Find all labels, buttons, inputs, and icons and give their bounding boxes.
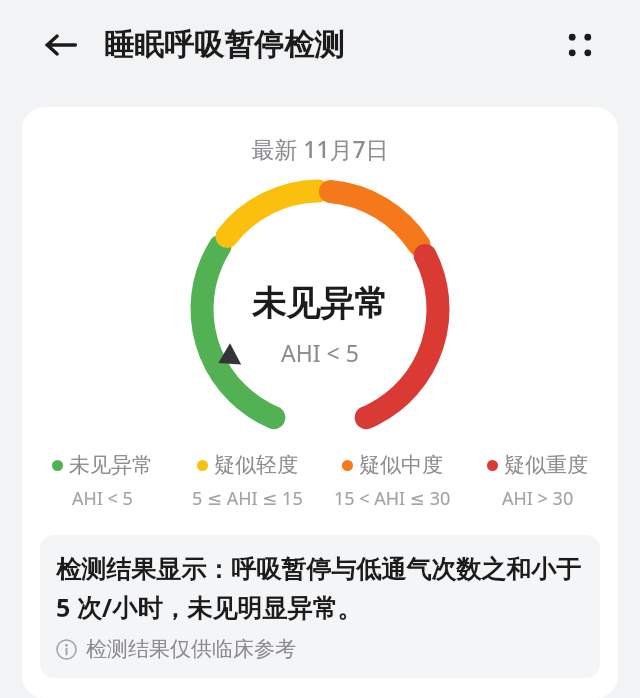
staticText: AHI < 5 <box>281 337 359 368</box>
staticText: 未见异常 <box>69 452 153 478</box>
button[interactable]: Back <box>38 22 84 68</box>
staticText: 睡眠呼吸暂停检测 <box>104 26 344 64</box>
staticText: AHI < 5 <box>72 486 133 511</box>
staticText: 15 < AHI ≤ 30 <box>334 486 451 511</box>
button[interactable]: More options <box>556 21 604 69</box>
staticText: 疑似轻度 <box>214 452 298 478</box>
staticText: 5 ≤ AHI ≤ 15 <box>192 486 303 511</box>
staticText: 最新 11月7日 <box>22 133 618 164</box>
staticText: 疑似中度 <box>359 452 443 478</box>
staticText: AHI > 30 <box>502 486 574 511</box>
staticText: 检测结果显示：呼吸暂停与低通气次数之和小于 5 次/小时，未见明显异常。 <box>56 551 584 624</box>
staticText: 检测结果仅供临床参考 <box>86 636 296 662</box>
staticText: 未见异常 <box>252 282 388 325</box>
staticText: 疑似重度 <box>504 452 588 478</box>
